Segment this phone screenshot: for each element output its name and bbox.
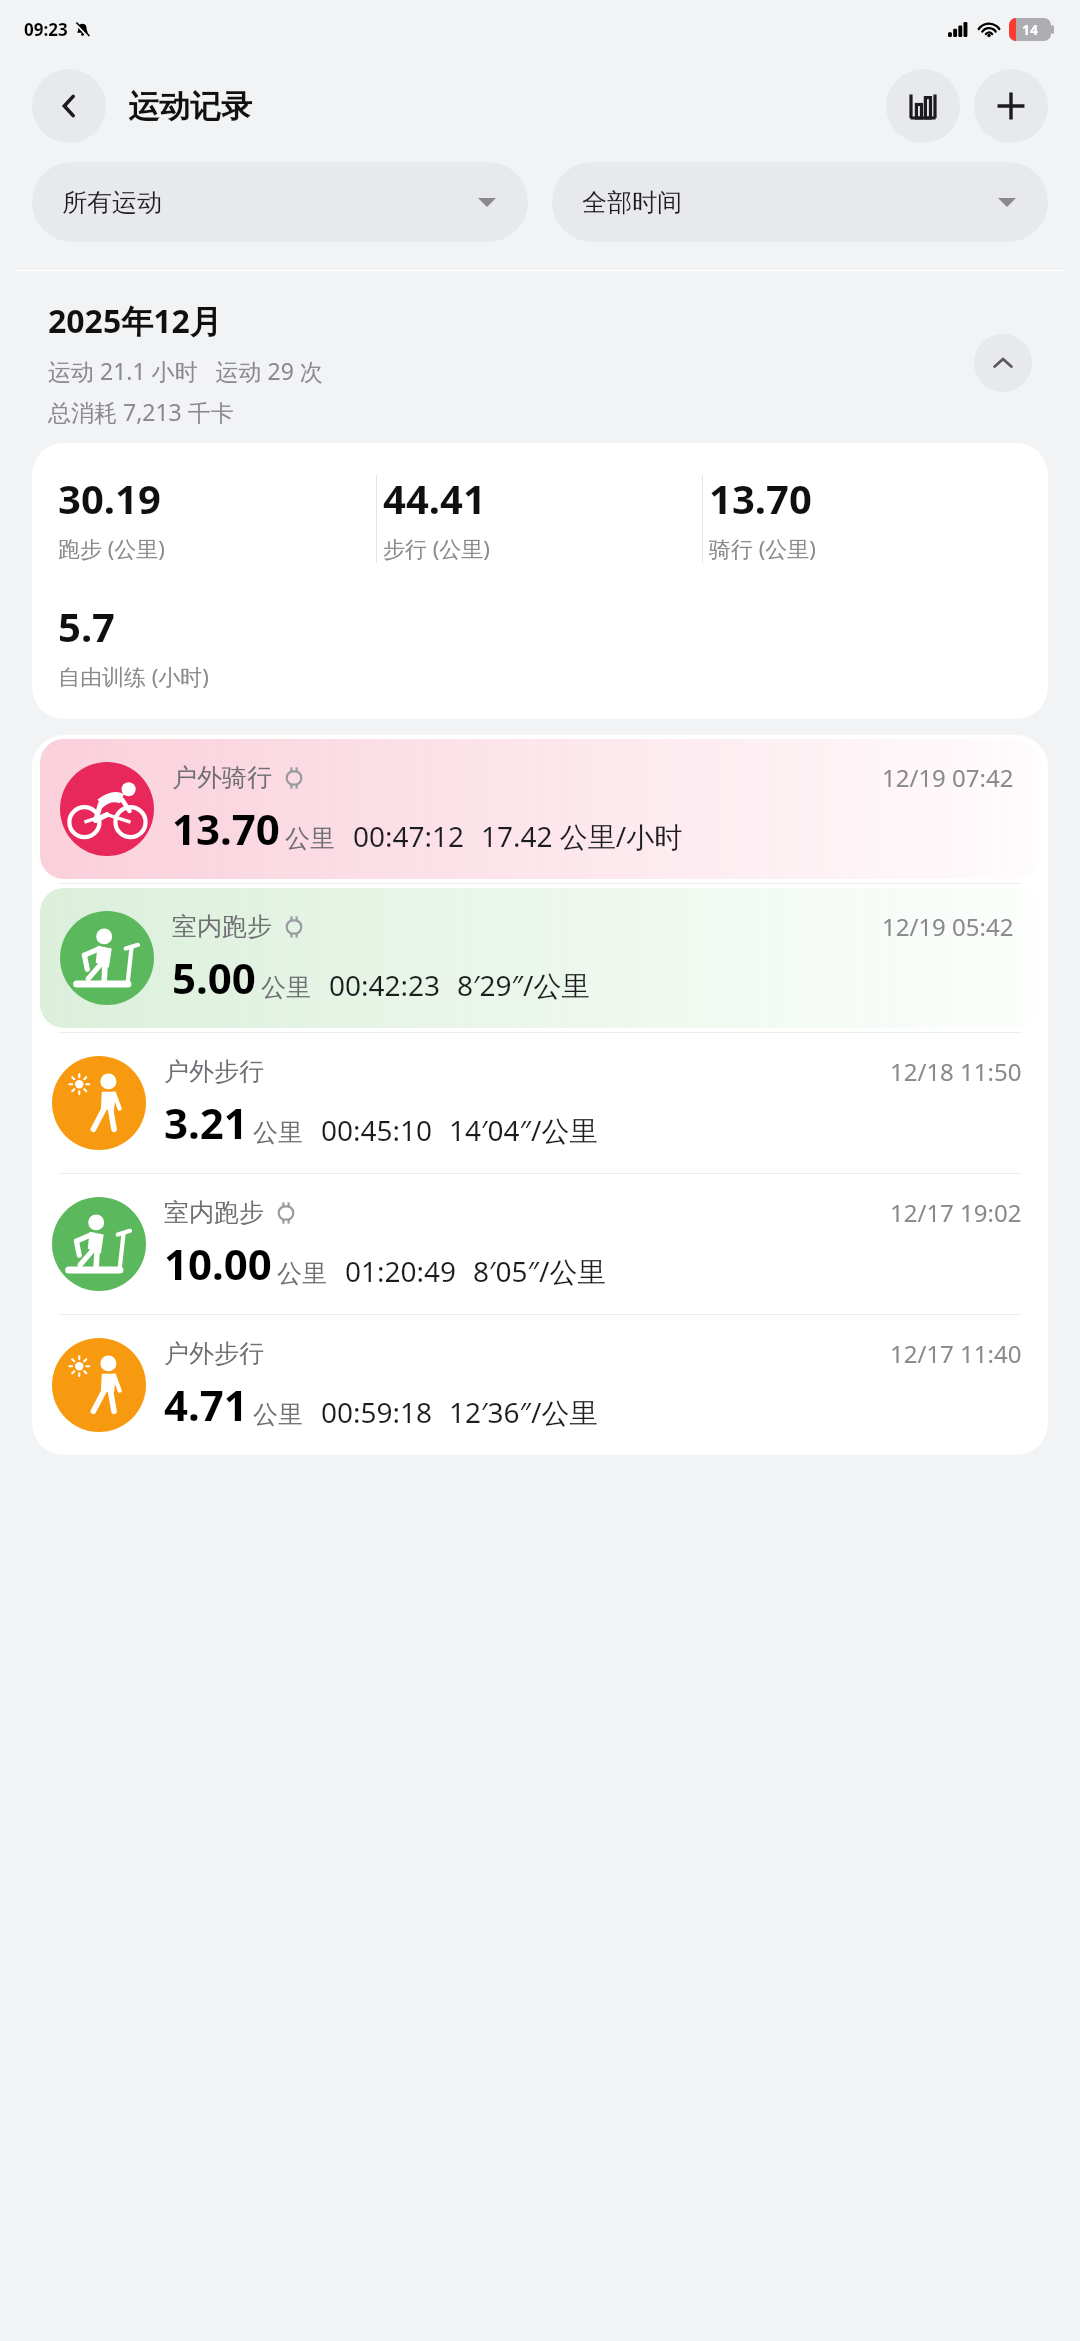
staticText: 00:59:18 [321,1393,433,1431]
staticText: 自由训练 (小时) [58,661,209,691]
button[interactable]: 室内跑步 [32,884,1048,1032]
button[interactable]: 户外步行 [32,1033,1048,1173]
staticText: 8′29″/公里 [457,966,590,1004]
staticText: 户外步行 [164,1338,264,1369]
staticText: 骑行 (公里) [709,533,816,563]
staticText: 12/19 07:42 [882,761,1014,794]
staticText: 运动记录 [128,87,252,126]
staticText: 户外步行 [164,1056,264,1087]
button[interactable]: Add [974,69,1048,143]
staticText: 14′04″/公里 [449,1111,598,1149]
staticText: 公里 [253,1117,303,1148]
staticText: 所有运动 [62,187,162,218]
staticText: 4.71 [164,1376,248,1433]
staticText: 13.70 [709,471,812,525]
staticText: 公里 [261,972,311,1003]
staticText: 5.7 [58,599,115,653]
staticText: 12/19 05:42 [882,910,1014,943]
button[interactable]: Statistics [886,69,960,143]
staticText: 12′36″/公里 [449,1393,598,1431]
staticText: 室内跑步 [172,911,272,942]
staticText: 3.21 [164,1094,248,1151]
staticText: 步行 (公里) [383,533,490,563]
staticText: 户外骑行 [172,762,272,793]
button[interactable]: 户外步行 [32,1315,1048,1455]
staticText: 运动 21.1 小时 运动 29 次 [48,355,323,386]
staticText: 公里 [253,1399,303,1430]
staticText: 09:23 [24,18,68,41]
staticText: 全部时间 [582,187,682,218]
button[interactable]: 室内跑步 [32,1174,1048,1314]
staticText: 2025年12月 [48,299,222,343]
button[interactable]: Back [32,69,106,143]
button[interactable]: 30.19 [32,443,1048,719]
staticText: 10.00 [164,1235,272,1292]
button[interactable]: Collapse [974,334,1032,392]
staticText: 5.00 [172,949,256,1006]
staticText: 44.41 [383,471,486,525]
staticText: 30.19 [58,471,161,525]
staticText: 公里 [285,823,335,854]
button[interactable]: 所有运动 [32,162,528,242]
staticText: 00:47:12 [353,817,465,855]
button[interactable]: 全部时间 [552,162,1048,242]
staticText: 17.42 公里/小时 [481,817,683,855]
staticText: 00:42:23 [329,966,441,1004]
staticText: 13.70 [172,800,280,857]
staticText: 跑步 (公里) [58,533,165,563]
staticText: 总消耗 7,213 千卡 [48,396,234,427]
staticText: 12/18 11:50 [890,1055,1022,1088]
staticText: 00:45:10 [321,1111,433,1149]
staticText: 8′05″/公里 [473,1252,606,1290]
staticText: 01:20:49 [345,1252,457,1290]
staticText: 12/17 19:02 [890,1196,1022,1229]
staticText: 14 [1022,20,1039,39]
button[interactable]: 户外骑行 [32,735,1048,883]
staticText: 公里 [277,1258,327,1289]
staticText: 室内跑步 [164,1197,264,1228]
staticText: 12/17 11:40 [890,1337,1022,1370]
